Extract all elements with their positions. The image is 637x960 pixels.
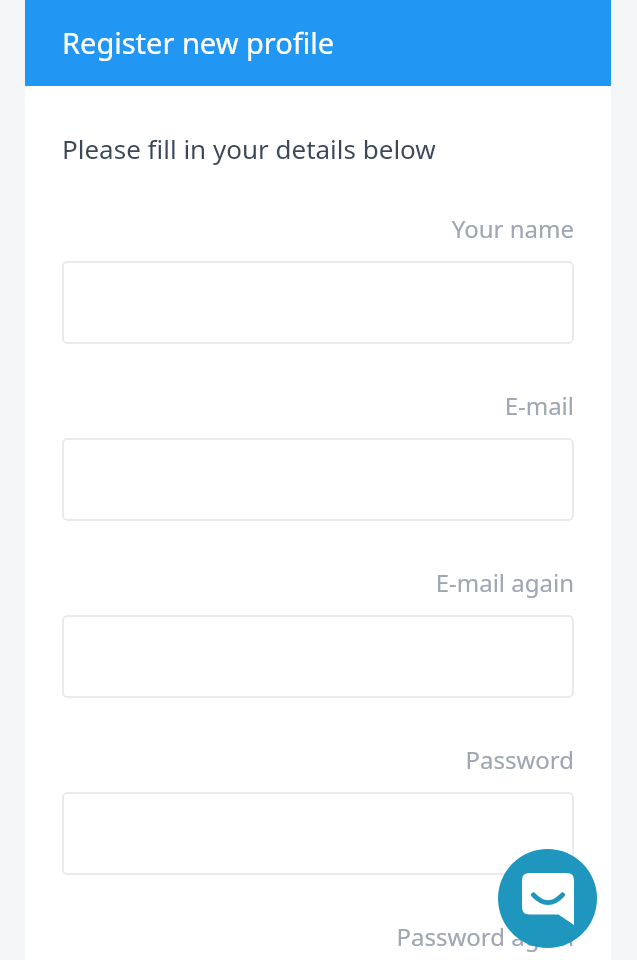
staticText: Register new profile [62, 23, 335, 62]
button[interactable]: Register new profile [25, 0, 611, 86]
staticText: Password [62, 743, 574, 776]
button[interactable] [62, 615, 574, 698]
staticText: E-mail again [62, 566, 574, 599]
staticText: Please fill in your details below [62, 131, 436, 166]
button[interactable] [62, 438, 574, 521]
staticText: E-mail [62, 389, 574, 422]
staticText: Your name [62, 212, 574, 245]
button[interactable] [62, 792, 574, 875]
button[interactable] [62, 261, 574, 344]
button[interactable]: Open chat support [498, 849, 597, 948]
staticText: Password again [62, 920, 574, 953]
